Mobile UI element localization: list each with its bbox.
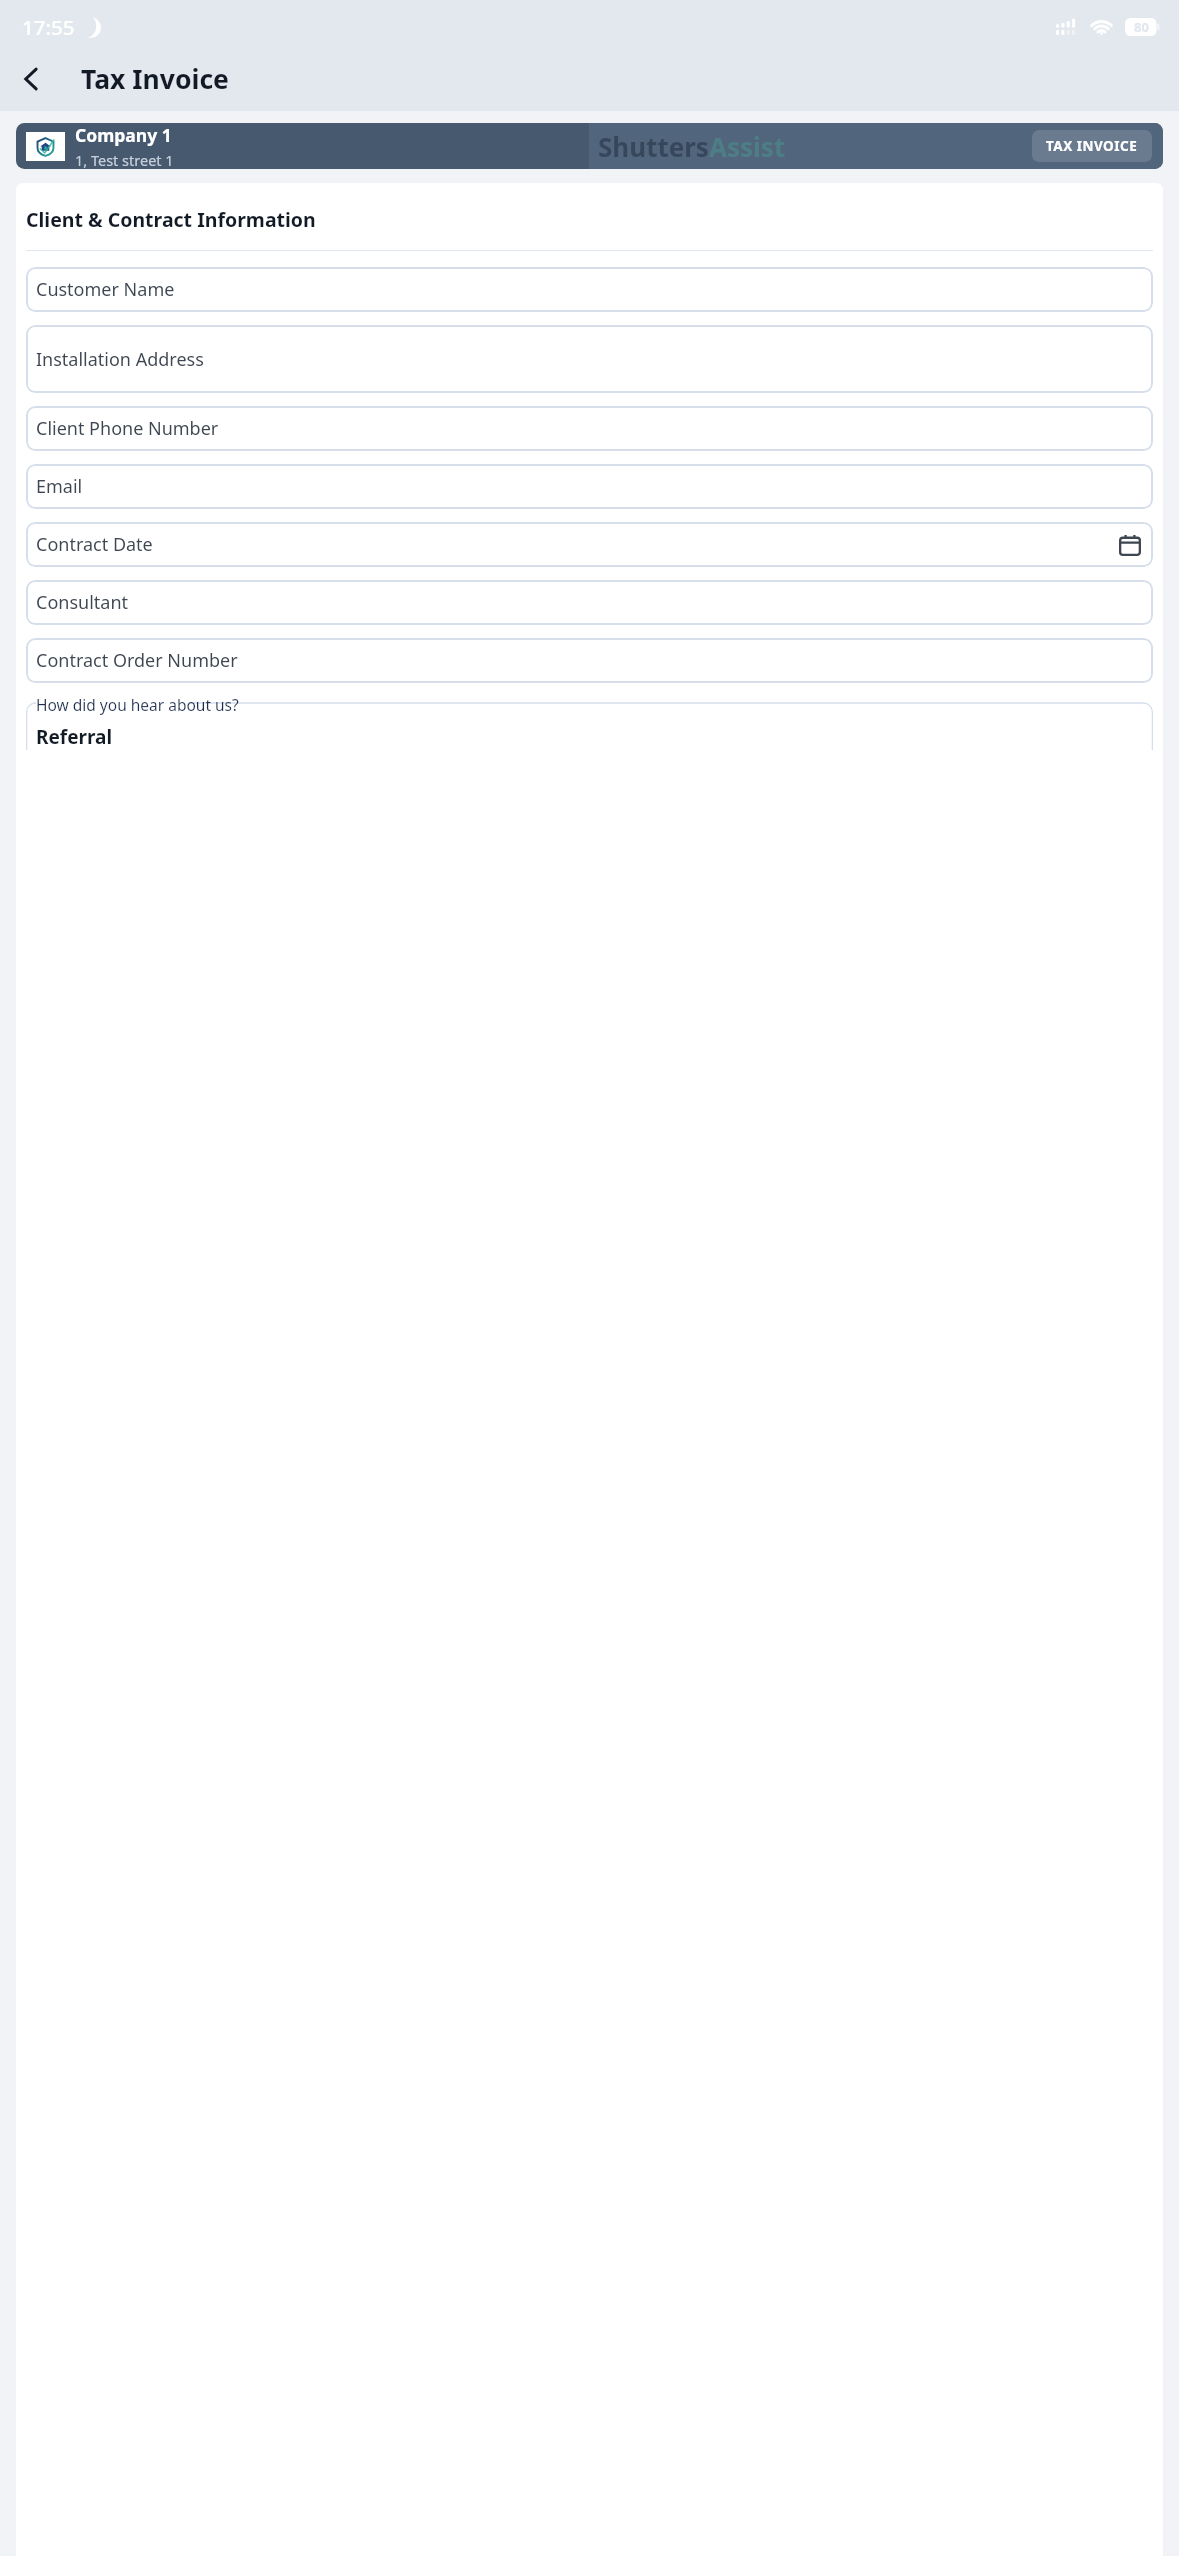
staticText: Tax Invoice (81, 61, 229, 97)
staticText: Customer Name (36, 277, 175, 302)
button[interactable]: Contract Order Number (26, 638, 1153, 683)
button[interactable]: Contract Date (26, 522, 1153, 567)
staticText: Email (36, 474, 83, 499)
button[interactable]: Email (26, 464, 1153, 509)
staticText: Contract Date (36, 532, 153, 557)
button[interactable]: Client Phone Number (26, 406, 1153, 451)
button[interactable]: Consultant (26, 580, 1153, 625)
staticText: Client & Contract Information (26, 206, 316, 233)
staticText: TAX INVOICE (1046, 137, 1138, 155)
staticText: Contract Order Number (36, 648, 238, 673)
staticText: Installation Address (36, 347, 204, 372)
staticText: Assist (709, 129, 786, 164)
button[interactable]: Back (6, 53, 58, 105)
button[interactable]: TAX INVOICE (1032, 130, 1152, 162)
staticText: Referral (36, 724, 113, 750)
button[interactable]: Shutters (16, 123, 1163, 169)
button[interactable]: Customer Name (26, 267, 1153, 312)
button[interactable]: Installation Address (26, 325, 1153, 393)
staticText: Consultant (36, 590, 128, 615)
staticText: How did you hear about us? (36, 694, 239, 715)
staticText: Client Phone Number (36, 416, 219, 441)
staticText: 1, Test street 1 (75, 150, 174, 169)
staticText: 17:55 (22, 13, 75, 41)
staticText: Shutters (598, 129, 709, 164)
other: Pick date (1117, 532, 1143, 558)
staticText: 80 (1134, 18, 1149, 36)
staticText: Company 1 (75, 123, 172, 147)
